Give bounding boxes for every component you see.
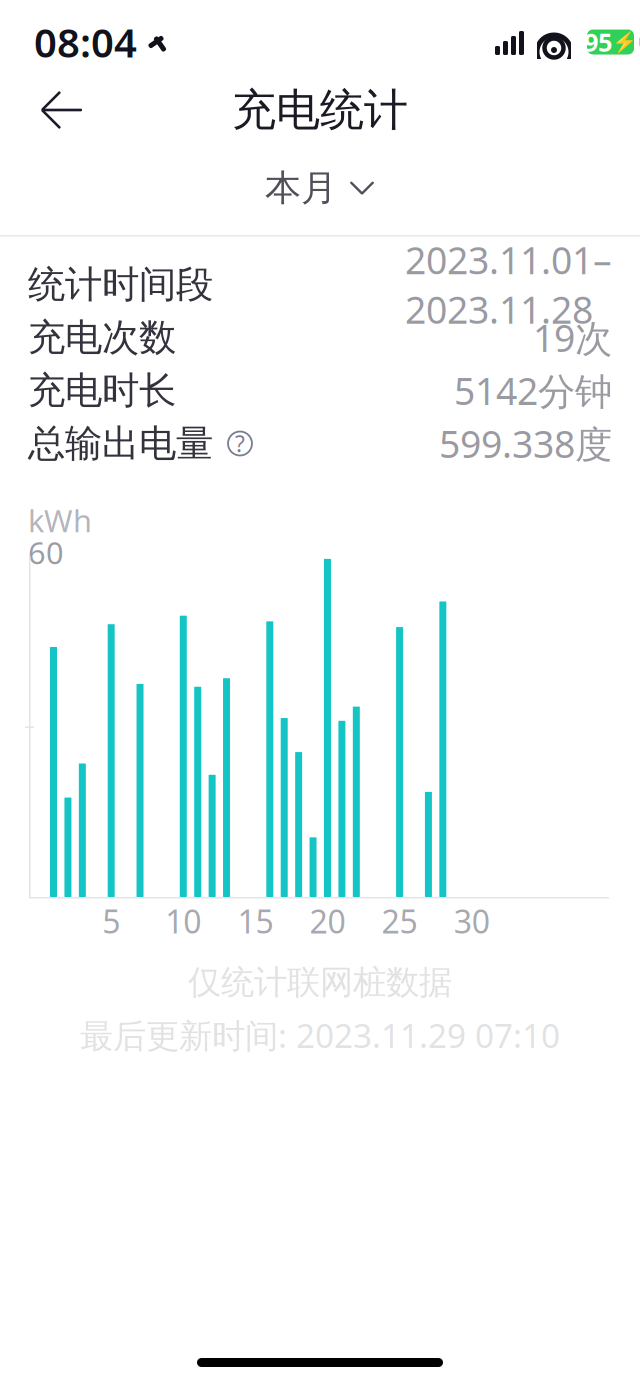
staticText: 5 — [102, 900, 120, 942]
staticText: 统计时间段 — [28, 262, 213, 307]
staticText: 95 — [584, 25, 612, 59]
staticText: 充电统计 — [232, 83, 408, 137]
button[interactable]: 本月 — [249, 162, 391, 214]
staticText: 最后更新时间: 2023.11.29 07:10 — [80, 1013, 560, 1057]
staticText: 30 — [454, 900, 490, 942]
staticText: 仅统计联网桩数据 — [188, 962, 452, 1003]
staticText: ⚡ — [612, 31, 637, 53]
staticText: 本月 — [265, 166, 337, 210]
staticText: 08:04 — [34, 15, 137, 68]
staticText: 2023.11.01–2023.11.28 — [405, 235, 612, 334]
button[interactable]: 返回 — [20, 77, 96, 143]
staticText: 充电次数 — [28, 315, 176, 360]
staticText: 10 — [165, 900, 201, 942]
staticText: kWh — [28, 500, 92, 541]
staticText: 599.338度 — [439, 419, 612, 468]
staticText: 25 — [382, 900, 418, 942]
staticText: 充电时长 — [28, 368, 176, 413]
staticText: 总输出电量 — [28, 421, 213, 466]
staticText: 15 — [237, 900, 273, 942]
staticText: ? — [235, 428, 245, 458]
staticText: 19次 — [533, 313, 612, 362]
staticText: 5142分钟 — [454, 366, 612, 415]
staticText: 60 — [28, 532, 64, 573]
staticText: 20 — [309, 900, 345, 942]
